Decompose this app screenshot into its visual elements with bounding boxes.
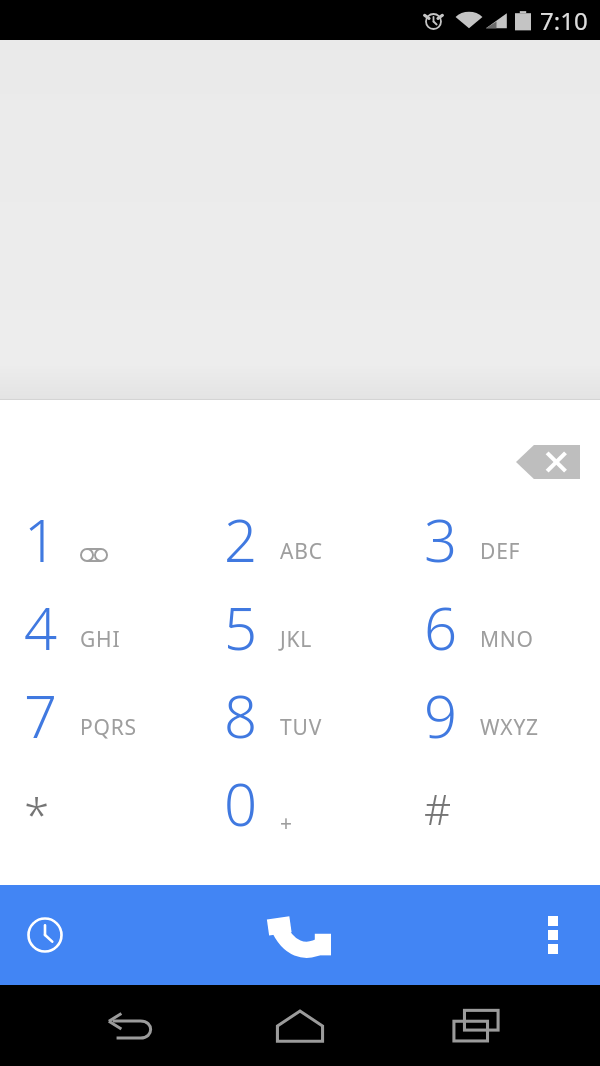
button[interactable]: Backspace [510, 436, 586, 488]
button[interactable]: 2 [200, 500, 400, 588]
staticText: DEF [480, 537, 521, 566]
button[interactable]: 4 [0, 588, 200, 676]
button[interactable]: 1 [0, 500, 200, 588]
button[interactable]: More options [522, 904, 584, 966]
button[interactable]: 0 [200, 764, 400, 852]
button[interactable]: 3 [400, 500, 600, 588]
button[interactable]: Home [268, 994, 332, 1058]
staticText: PQRS [80, 713, 137, 742]
button[interactable]: Call history [14, 904, 76, 966]
button[interactable]: # [400, 764, 600, 852]
button[interactable]: Call [254, 889, 346, 981]
staticText: # [424, 780, 452, 837]
staticText: 5 [224, 588, 258, 667]
staticText: 1 [24, 500, 58, 579]
staticText: 2 [224, 500, 258, 579]
staticText: GHI [80, 625, 121, 654]
staticText: 9 [424, 676, 458, 755]
staticText: ABC [280, 537, 323, 566]
button[interactable]: 5 [200, 588, 400, 676]
button[interactable]: 6 [400, 588, 600, 676]
staticText: 4 [24, 588, 58, 667]
staticText: 6 [424, 588, 458, 667]
staticText: 7:10 [540, 4, 588, 37]
button[interactable]: 9 [400, 676, 600, 764]
button[interactable]: * [0, 764, 200, 852]
staticText: WXYZ [480, 713, 539, 742]
staticText: 7 [24, 676, 58, 755]
button[interactable]: 8 [200, 676, 400, 764]
staticText: + [280, 809, 293, 838]
staticText: 8 [224, 676, 258, 755]
staticText: JKL [280, 625, 313, 654]
staticText: 3 [424, 500, 458, 579]
staticText: * [24, 783, 50, 846]
staticText: TUV [280, 713, 323, 742]
button[interactable]: Recent apps [444, 994, 508, 1058]
staticText: 0 [224, 764, 258, 843]
staticText: MNO [480, 625, 534, 654]
button[interactable]: 7 [0, 676, 200, 764]
button[interactable]: Back [98, 994, 162, 1058]
